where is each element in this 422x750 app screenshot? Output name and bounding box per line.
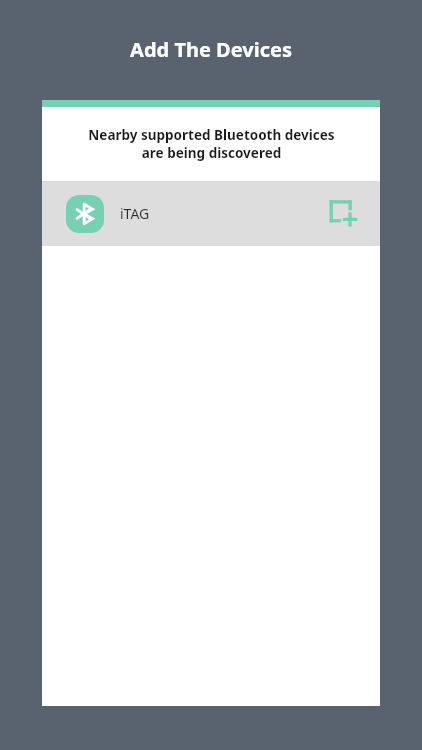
- button[interactable]: Add device: [320, 190, 368, 238]
- staticText: Nearby supported Bluetooth devices are b…: [88, 126, 335, 162]
- staticText: Add The Devices: [130, 36, 292, 63]
- button[interactable]: iTAG: [42, 181, 380, 246]
- staticText: iTAG: [120, 204, 150, 223]
